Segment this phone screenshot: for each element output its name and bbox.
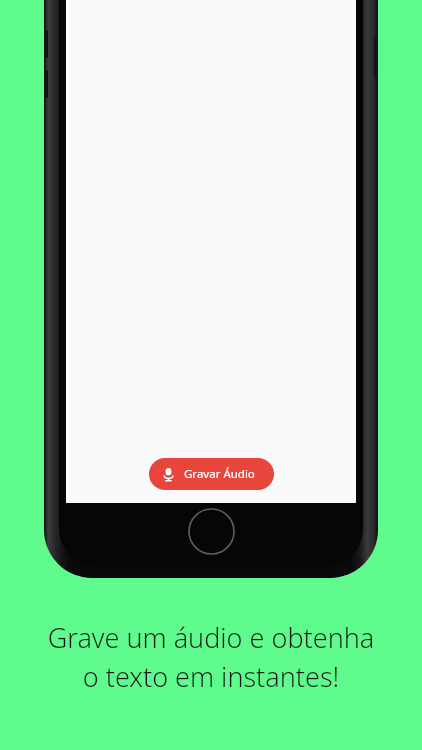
- button[interactable]: Record audio: [149, 458, 274, 490]
- other: Record audio: [162, 468, 175, 481]
- staticText: Gravar Áudio: [184, 466, 255, 482]
- other: Home: [188, 508, 235, 555]
- staticText: Grave um áudio e obtenha o texto em inst…: [0, 619, 422, 695]
